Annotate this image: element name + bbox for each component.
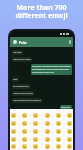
staticText: Hey Pete!: [13, 51, 22, 54]
button[interactable]: Pete: [10, 37, 73, 47]
button[interactable]: Emoji: [56, 144, 61, 149]
button[interactable]: Message: [12, 50, 23, 55]
button[interactable]: Emoji: [11, 144, 16, 149]
button[interactable]: Emoji: [33, 121, 38, 126]
button[interactable]: Emoji: [22, 144, 27, 149]
staticText: You're doing fine and deserve it: [13, 99, 41, 102]
button[interactable]: Emoji: [56, 113, 61, 118]
staticText: I hope you get this job: [13, 92, 33, 95]
button[interactable]: Emoji: [67, 137, 72, 142]
button[interactable]: Emoji: [22, 113, 27, 118]
button[interactable]: Emoji: [33, 129, 38, 134]
button[interactable]: Emoji: [56, 121, 61, 126]
staticText: It's amazing Matt: [13, 85, 29, 88]
button[interactable]: Emoji: [11, 129, 16, 134]
button[interactable]: Message: [12, 84, 30, 89]
button[interactable]: Emoji: [33, 144, 38, 149]
button[interactable]: Emoji: [67, 121, 72, 126]
staticText: How are you doing?: [13, 58, 31, 61]
button[interactable]: Emoji: [45, 121, 50, 126]
button[interactable]: Emoji: [33, 137, 38, 142]
staticText: Thank you: [61, 106, 71, 108]
staticText: Pete: [19, 40, 27, 45]
button[interactable]: Emoji: [56, 129, 61, 134]
button[interactable]: Video call: [69, 40, 71, 44]
button[interactable]: Emoji: [45, 137, 50, 142]
button[interactable]: Emoji: [67, 113, 72, 118]
button[interactable]: Emoji: [45, 113, 50, 118]
button[interactable]: Emoji: [45, 144, 50, 149]
button[interactable]: Emoji: [33, 113, 38, 118]
button[interactable]: Emoji: [11, 121, 16, 126]
button[interactable]: Emoji: [22, 121, 27, 126]
button[interactable]: Emoji: [11, 113, 16, 118]
button[interactable]: Emoji: [67, 144, 72, 149]
button[interactable]: Emoji: [67, 129, 72, 134]
button[interactable]: Message: [12, 57, 32, 62]
staticText: Wow: [13, 78, 18, 81]
button[interactable]: Message: [12, 98, 42, 103]
button[interactable]: Emoji: [11, 137, 16, 142]
button[interactable]: Message: [12, 91, 34, 96]
button[interactable]: Emoji: [56, 137, 61, 142]
button[interactable]: Emoji: [45, 129, 50, 134]
button[interactable]: Emoji: [22, 137, 27, 142]
button[interactable]: Emoji: [22, 129, 27, 134]
button[interactable]: Message: [12, 77, 19, 82]
button[interactable]: Message: [31, 64, 72, 75]
staticText: More than 700 different emoji: [15, 3, 68, 20]
staticText: Hey, Peter! I graduated college with hon…: [32, 65, 71, 74]
button[interactable]: Message: [60, 105, 72, 109]
